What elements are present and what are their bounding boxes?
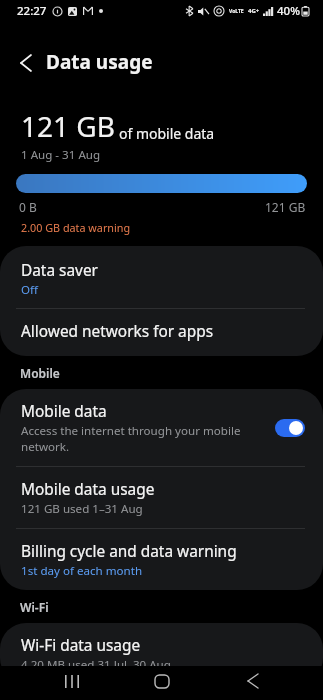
staticText: 40% — [277, 3, 300, 19]
button[interactable]: Mobile data usage — [0, 467, 323, 528]
staticText: of mobile data — [119, 124, 215, 143]
button[interactable]: Billing cycle and data warning — [0, 529, 323, 590]
button[interactable]: Back — [239, 667, 267, 695]
staticText: 121 GB — [21, 107, 115, 145]
staticText: Data usage — [46, 49, 153, 75]
staticText: Data saver — [21, 260, 98, 281]
staticText: VoLTE — [229, 8, 244, 15]
staticText: Mobile data — [21, 401, 107, 422]
button[interactable]: Data saver — [0, 246, 323, 308]
button[interactable]: Recent apps — [58, 667, 86, 695]
button[interactable]: Mobile data on — [275, 419, 305, 437]
button[interactable]: Navigate up — [13, 50, 39, 76]
button[interactable]: Home — [148, 667, 176, 695]
button[interactable]: Mobile data — [0, 389, 323, 466]
staticText: Billing cycle and data warning — [21, 541, 237, 562]
staticText: 2.00 GB data warning — [21, 220, 131, 235]
staticText: 4.20 MB used 31 Jul–30 Aug — [21, 657, 171, 673]
staticText: 1 Aug - 31 Aug — [21, 147, 101, 163]
staticText: 4G+ — [248, 7, 260, 15]
staticText: 121 GB used 1–31 Aug — [21, 501, 143, 517]
staticText: Mobile — [20, 365, 60, 381]
staticText: Wi-Fi data usage — [21, 635, 141, 656]
staticText: Mobile data usage — [21, 479, 155, 500]
staticText: Allowed networks for apps — [21, 321, 214, 342]
staticText: 121 GB — [265, 199, 306, 215]
button[interactable]: Allowed networks for apps — [0, 309, 323, 356]
staticText: 0 B — [19, 199, 37, 215]
button[interactable]: Wi-Fi data usage — [0, 623, 323, 684]
staticText: Access the internet through your mobile … — [21, 423, 267, 455]
staticText: 1st day of each month — [21, 563, 143, 579]
staticText: Off — [21, 282, 39, 298]
staticText: 22:27 — [17, 3, 47, 19]
staticText: Wi-Fi — [20, 599, 49, 615]
